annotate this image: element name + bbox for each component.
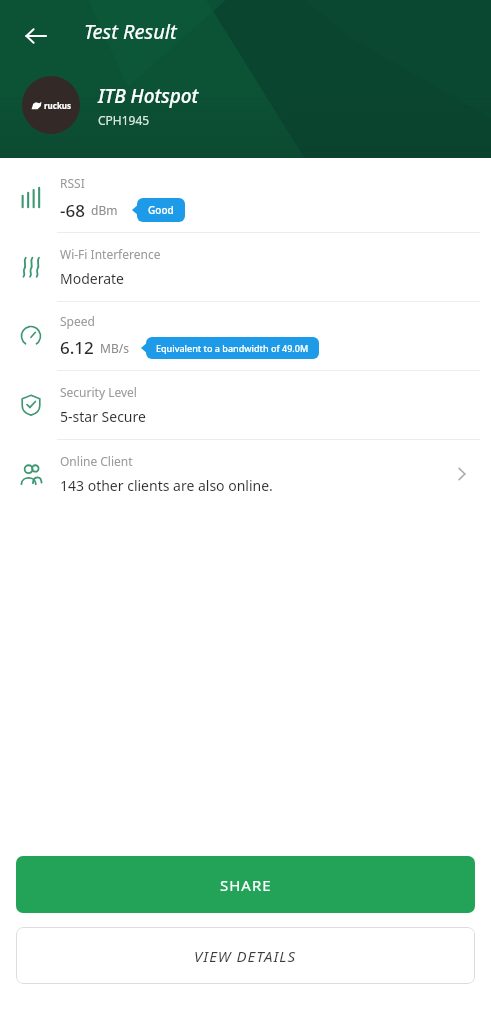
staticText: ruckus — [44, 100, 72, 111]
button[interactable]: Online Client — [0, 440, 491, 508]
staticText: VIEW DETAILS — [194, 946, 297, 966]
staticText: CPH1945 — [98, 112, 150, 128]
staticText: Test Result — [84, 18, 177, 45]
staticText: RSSI — [60, 175, 85, 191]
staticText: MB/s — [100, 340, 129, 356]
staticText: 5-star Secure — [60, 407, 146, 426]
button[interactable]: Back — [12, 12, 60, 60]
staticText: Moderate — [60, 269, 124, 288]
staticText: Wi-Fi Interference — [60, 246, 161, 262]
staticText: Security Level — [60, 384, 137, 400]
button[interactable]: SHARE — [16, 856, 475, 913]
staticText: 6.12 — [60, 336, 94, 359]
staticText: ITB Hotspot — [98, 83, 199, 109]
staticText: Good — [148, 203, 174, 217]
staticText: 143 other clients are also online. — [60, 476, 273, 495]
button[interactable]: Security Level — [0, 371, 491, 439]
button[interactable]: VIEW DETAILS — [16, 927, 475, 984]
staticText: Equivalent to a bandwidth of 49.0M — [156, 342, 309, 354]
staticText: SHARE — [220, 875, 272, 895]
button[interactable]: Speed — [0, 302, 491, 370]
staticText: Speed — [60, 313, 95, 329]
button[interactable]: Online clients — [447, 459, 477, 489]
button[interactable]: Wi-Fi Interference — [0, 233, 491, 301]
staticText: Online Client — [60, 453, 133, 469]
button[interactable]: RSSI — [0, 164, 491, 232]
staticText: -68 — [60, 199, 85, 222]
staticText: dBm — [91, 202, 118, 218]
